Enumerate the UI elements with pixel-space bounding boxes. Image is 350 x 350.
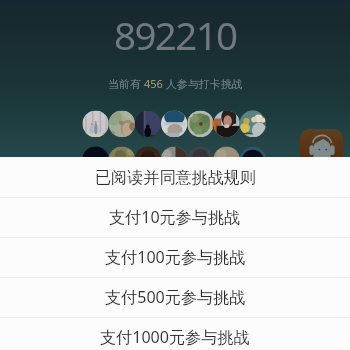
staticText: 892210: [114, 9, 237, 61]
button[interactable]: 支付10元参与挑战: [0, 197, 350, 237]
button[interactable]: 支付100元参与挑战: [0, 237, 350, 277]
staticText: 456: [144, 76, 163, 91]
staticText: 支付100元参与挑战: [105, 246, 246, 268]
staticText: 支付500元参与挑战: [105, 286, 246, 308]
staticText: 支付1000元参与挑战: [100, 326, 250, 348]
button[interactable]: 支付1000元参与挑战: [0, 317, 350, 350]
button[interactable]: 支付500元参与挑战: [0, 277, 350, 317]
staticText: 人参与打卡挑战: [163, 76, 243, 91]
staticText: 支付10元参与挑战: [109, 206, 241, 228]
button[interactable]: Customer support: [300, 129, 343, 172]
staticText: 已阅读并同意挑战规则: [95, 167, 256, 187]
button[interactable]: 已阅读并同意挑战规则: [0, 157, 350, 197]
staticText: 当前有: [108, 76, 144, 91]
